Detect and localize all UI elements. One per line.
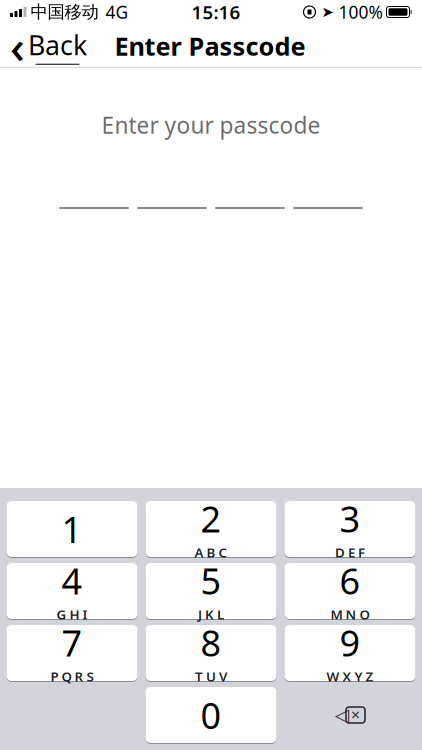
staticText: T U V	[195, 668, 227, 685]
staticText: 2	[200, 495, 221, 542]
staticText: 3	[339, 495, 360, 542]
staticText: ➤	[321, 4, 333, 20]
staticText: J K L	[198, 606, 224, 623]
staticText: Enter your passcode	[101, 110, 320, 140]
staticText: 4G	[105, 0, 128, 23]
staticText: ◁	[335, 704, 349, 726]
button[interactable]: 6	[284, 562, 415, 620]
staticText: Enter Passcode	[114, 29, 305, 63]
staticText: D E F	[335, 544, 365, 561]
staticText: 9	[339, 619, 360, 666]
button[interactable]: 2	[145, 500, 276, 558]
staticText: M N O	[330, 606, 369, 623]
staticText: A B C	[194, 544, 227, 561]
staticText: W X Y Z	[326, 668, 373, 685]
staticText: G H I	[56, 606, 87, 623]
button[interactable]: 9	[284, 624, 415, 682]
staticText: ✕	[350, 708, 360, 722]
button[interactable]: Delete	[284, 687, 415, 743]
button[interactable]: 8	[145, 624, 276, 682]
button[interactable]: ‹	[0, 24, 97, 68]
staticText: 15:16	[191, 0, 240, 24]
button[interactable]: 4	[6, 562, 137, 620]
button[interactable]: 7	[6, 624, 137, 682]
staticText: 6	[339, 557, 360, 604]
staticText: 7	[61, 619, 82, 666]
button[interactable]: 1	[6, 500, 137, 558]
staticText: 100%	[338, 0, 382, 23]
staticText: P Q R S	[50, 668, 93, 685]
button[interactable]: 0	[145, 686, 276, 744]
staticText: 中国移动	[30, 1, 98, 23]
button[interactable]: 3	[284, 500, 415, 558]
staticText: 5	[200, 557, 221, 604]
staticText: 8	[200, 619, 221, 666]
staticText: 4	[61, 557, 82, 604]
staticText: 1	[61, 505, 82, 553]
staticText: Back	[28, 27, 87, 63]
staticText: 0	[200, 691, 221, 739]
button[interactable]: 5	[145, 562, 276, 620]
staticText: ‹	[10, 16, 25, 76]
